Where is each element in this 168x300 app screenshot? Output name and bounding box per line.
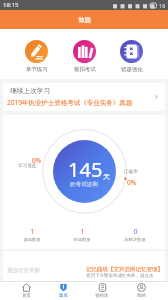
staticText: 未解决数量 [124,237,146,242]
staticText: 0% [127,178,137,187]
staticText: 继续上次学习 [10,87,51,95]
button[interactable]: 题库 [53,283,74,299]
staticText: 16 [159,2,166,9]
button[interactable]: 我的 [131,283,152,299]
staticText: 做题 [78,16,91,24]
staticText: 首页 [22,293,31,299]
staticText: 题库 [59,293,68,299]
button[interactable]: 播放语音讲解 [3,251,165,281]
staticText: 查到下方图形变成红色的，请点击 [86,273,154,279]
staticText: 1 [30,227,35,237]
staticText: 我的 [137,293,146,299]
button[interactable]: 首页 [16,283,37,299]
staticText: 18:15 [3,1,19,9]
staticText: 145 [68,156,103,183]
staticText: 学习速度 [18,163,37,169]
button[interactable]: 1 [8,227,56,242]
staticText: 错题数量 [73,237,91,242]
button[interactable]: 模拟考试 [73,40,96,73]
staticText: 距考试还剩 [70,181,98,188]
staticText: 资料库 [95,293,109,299]
button[interactable]: 资料库 [89,283,115,299]
staticText: 1 [80,227,85,237]
staticText: 错题强化 [121,66,143,73]
button[interactable]: 1 [58,227,106,242]
button[interactable]: 0 [111,227,159,242]
button[interactable]: 章节练习 [25,40,48,73]
staticText: 章节练习 [26,66,48,73]
staticText: 模拟考试 [74,66,96,73]
staticText: 0% [32,156,42,165]
staticText: 0 [133,227,138,237]
staticText: 2019年执业护士资格考试《专业实务》真题 [7,98,133,107]
staticText: 天 [103,172,110,181]
button[interactable]: 继续上次学习 [3,83,165,111]
staticText: 记忆曲线【艾宾浩斯记忆管理】 [86,266,163,273]
staticText: 播放语音讲解 [7,267,40,274]
button[interactable]: 错题强化 [120,40,143,73]
staticText: 正确率 [124,169,138,175]
staticText: 做题数量 [23,237,41,242]
